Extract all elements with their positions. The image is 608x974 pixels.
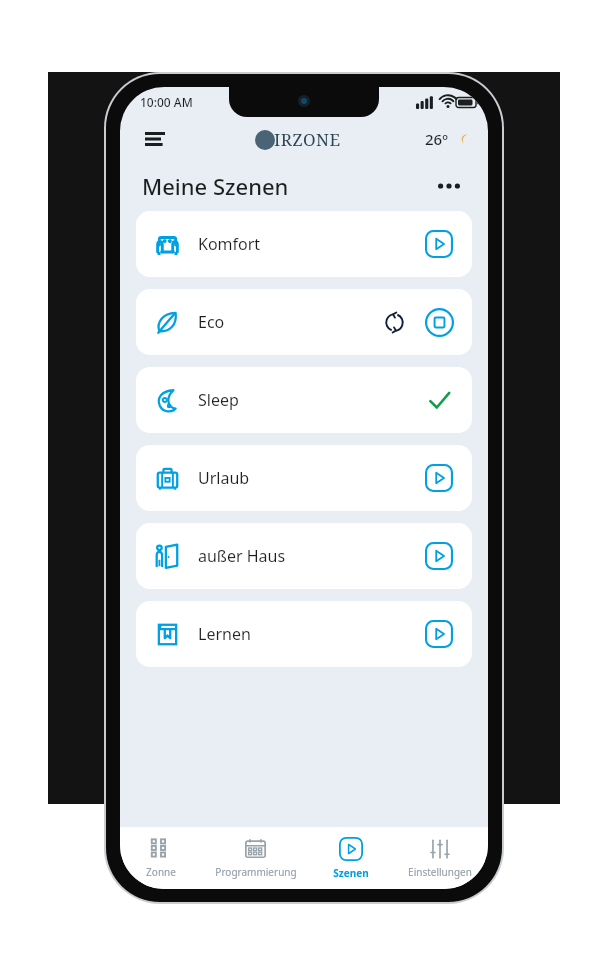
button[interactable]: Menu (138, 122, 172, 156)
button[interactable]: Programmierung (201, 827, 310, 889)
button[interactable]: Active (422, 383, 456, 417)
staticText: Eco (198, 311, 225, 333)
button[interactable]: Stop (422, 305, 456, 339)
staticText: Programmierung (215, 865, 297, 879)
staticText: Einstellungen (408, 865, 472, 879)
button[interactable]: Einstellungen (391, 827, 488, 889)
button[interactable]: Activate Komfort (422, 227, 456, 261)
button[interactable]: Restart (378, 306, 410, 338)
button[interactable]: Urlaub (136, 445, 472, 511)
staticText: Urlaub (198, 467, 250, 489)
button[interactable]: More options (432, 169, 466, 203)
button[interactable]: Activate Lernen (422, 617, 456, 651)
button[interactable]: Lernen (136, 601, 472, 667)
button[interactable]: Eco (136, 289, 472, 355)
staticText: 26º (425, 129, 448, 149)
staticText: IRZONE (274, 128, 341, 151)
button[interactable]: Activate Urlaub (422, 461, 456, 495)
staticText: Zonne (146, 865, 176, 879)
staticText: Sleep (198, 389, 239, 411)
staticText: außer Haus (198, 545, 286, 567)
staticText: Lernen (198, 623, 251, 645)
staticText: Komfort (198, 233, 261, 255)
button[interactable]: Komfort (136, 211, 472, 277)
button[interactable]: Zonne (120, 827, 201, 889)
button[interactable]: außer Haus (136, 523, 472, 589)
button[interactable]: Sleep (136, 367, 472, 433)
button[interactable]: Szenen (310, 827, 391, 889)
staticText: Meine Szenen (142, 171, 289, 201)
staticText: Szenen (333, 866, 369, 880)
staticText: 10:00 AM (140, 94, 193, 110)
button[interactable]: Activate außer Haus (422, 539, 456, 573)
